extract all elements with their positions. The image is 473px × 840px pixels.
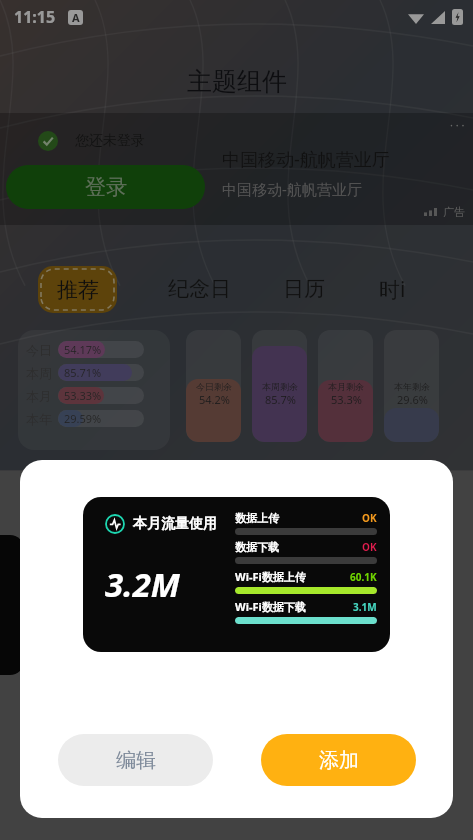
staticText: 29.6%	[397, 392, 428, 407]
staticText: 主题组件	[187, 66, 287, 97]
staticText: Wi-Fi数据上传	[235, 569, 306, 584]
staticText: 本周	[26, 365, 52, 381]
staticText: 60.1K	[350, 570, 377, 584]
staticText: 您还未登录	[75, 132, 145, 150]
staticText: 数据下载	[235, 540, 279, 554]
staticText: Wi-Fi数据下载	[235, 599, 306, 614]
button[interactable]: 编辑	[58, 734, 213, 786]
button[interactable]: 时i	[373, 269, 412, 310]
staticText: 今日	[26, 342, 52, 358]
staticText: 11:15	[14, 6, 56, 28]
staticText: 登录	[85, 174, 127, 200]
staticText: 本月	[26, 388, 52, 404]
staticText: 数据上传	[235, 511, 279, 525]
button[interactable]: 登录	[6, 165, 205, 209]
staticText: 中国移动-航帆营业厅	[222, 179, 362, 199]
staticText: 推荐	[57, 277, 99, 303]
button[interactable]: 推荐	[38, 266, 117, 313]
staticText: 日历	[283, 276, 325, 302]
staticText: 本年	[26, 411, 52, 427]
staticText: 54.17%	[64, 342, 102, 357]
staticText: 本月剩余	[328, 381, 364, 392]
staticText: 添加	[319, 748, 359, 773]
staticText: A	[72, 10, 80, 25]
staticText: 纪念日	[168, 276, 231, 302]
button[interactable]: 纪念日	[162, 270, 237, 308]
staticText: 54.2%	[199, 392, 230, 407]
staticText: 广告	[443, 205, 465, 219]
staticText: OK	[362, 511, 377, 525]
button[interactable]: Data usage	[83, 497, 390, 652]
staticText: 本年剩余	[394, 381, 430, 392]
staticText: · · ·	[450, 117, 465, 132]
button[interactable]: 日历	[277, 270, 331, 308]
staticText: 时i	[379, 275, 406, 304]
staticText: 3.2M	[105, 562, 180, 607]
staticText: 中国移动-航帆营业厅	[222, 147, 390, 172]
staticText: 85.7%	[265, 392, 296, 407]
staticText: OK	[362, 540, 377, 554]
button[interactable]: 添加	[261, 734, 416, 786]
staticText: 3.1M	[353, 600, 377, 614]
staticText: 29.59%	[64, 411, 102, 426]
staticText: 85.71%	[64, 365, 102, 380]
staticText: 今日剩余	[196, 381, 232, 392]
staticText: 编辑	[116, 748, 156, 773]
staticText: 本月流量使用	[133, 515, 217, 533]
staticText: 本周剩余	[262, 381, 298, 392]
staticText: 53.33%	[64, 388, 102, 403]
other: Data usage	[105, 514, 125, 534]
staticText: 53.3%	[331, 392, 362, 407]
